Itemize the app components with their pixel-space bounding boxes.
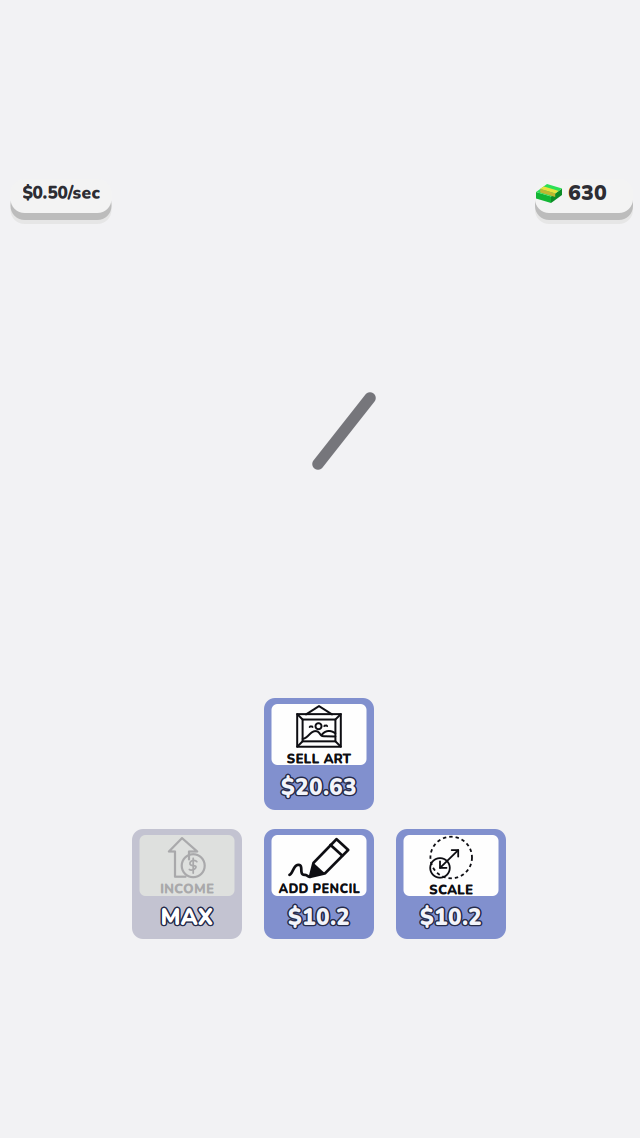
staticText: $10.2 bbox=[289, 903, 351, 934]
staticText: ADD PENCIL bbox=[278, 880, 359, 898]
staticText: MAX bbox=[160, 902, 213, 933]
button[interactable]: INCOME bbox=[132, 829, 242, 939]
staticText: $10.2 bbox=[287, 901, 349, 932]
button[interactable]: ADD PENCIL bbox=[264, 829, 374, 939]
staticText: $10.2 bbox=[288, 901, 350, 931]
staticText: $20.63 bbox=[282, 773, 358, 804]
staticText: SELL ART bbox=[286, 750, 351, 768]
staticText: SCALE bbox=[429, 881, 473, 899]
staticText: $10.2 bbox=[421, 902, 483, 933]
staticText: MAX bbox=[162, 902, 215, 933]
staticText: $10.2 bbox=[421, 901, 483, 932]
staticText: MAX bbox=[159, 903, 212, 934]
button[interactable]: Money 630 bbox=[535, 176, 633, 222]
staticText: $10.2 bbox=[287, 902, 349, 933]
staticText: $10.2 bbox=[288, 902, 350, 933]
staticText: $10.2 bbox=[289, 901, 351, 932]
staticText: INCOME bbox=[160, 880, 214, 898]
staticText: 630 bbox=[568, 178, 607, 208]
staticText: MAX bbox=[161, 901, 214, 932]
staticText: $10.2 bbox=[421, 903, 483, 934]
staticText: $10.2 bbox=[287, 903, 349, 934]
staticText: $0.50/sec bbox=[22, 181, 99, 205]
staticText: $20.63 bbox=[281, 772, 357, 803]
staticText: $20.63 bbox=[282, 772, 358, 803]
staticText: $10.2 bbox=[420, 901, 482, 931]
button[interactable]: Income rate bbox=[10, 176, 111, 222]
button[interactable]: SELL ART bbox=[264, 698, 374, 810]
staticText: $10.2 bbox=[419, 901, 481, 932]
staticText: MAX bbox=[159, 901, 212, 932]
button[interactable]: SCALE bbox=[396, 829, 506, 939]
staticText: $20.63 bbox=[281, 773, 357, 804]
staticText: $20.63 bbox=[280, 773, 356, 804]
staticText: $10.2 bbox=[288, 903, 350, 934]
staticText: $10.2 bbox=[419, 902, 481, 933]
staticText: $10.2 bbox=[420, 902, 482, 933]
staticText: $20.63 bbox=[282, 771, 358, 802]
staticText: $20.63 bbox=[281, 771, 357, 801]
staticText: $20.63 bbox=[280, 771, 356, 802]
staticText: MAX bbox=[161, 903, 214, 934]
staticText: $10.2 bbox=[289, 902, 351, 933]
staticText: MAX bbox=[160, 901, 213, 931]
staticText: MAX bbox=[160, 903, 213, 934]
staticText: $10.2 bbox=[419, 903, 481, 934]
staticText: $10.2 bbox=[420, 903, 482, 934]
staticText: $20.63 bbox=[280, 772, 356, 803]
staticText: MAX bbox=[159, 902, 212, 933]
